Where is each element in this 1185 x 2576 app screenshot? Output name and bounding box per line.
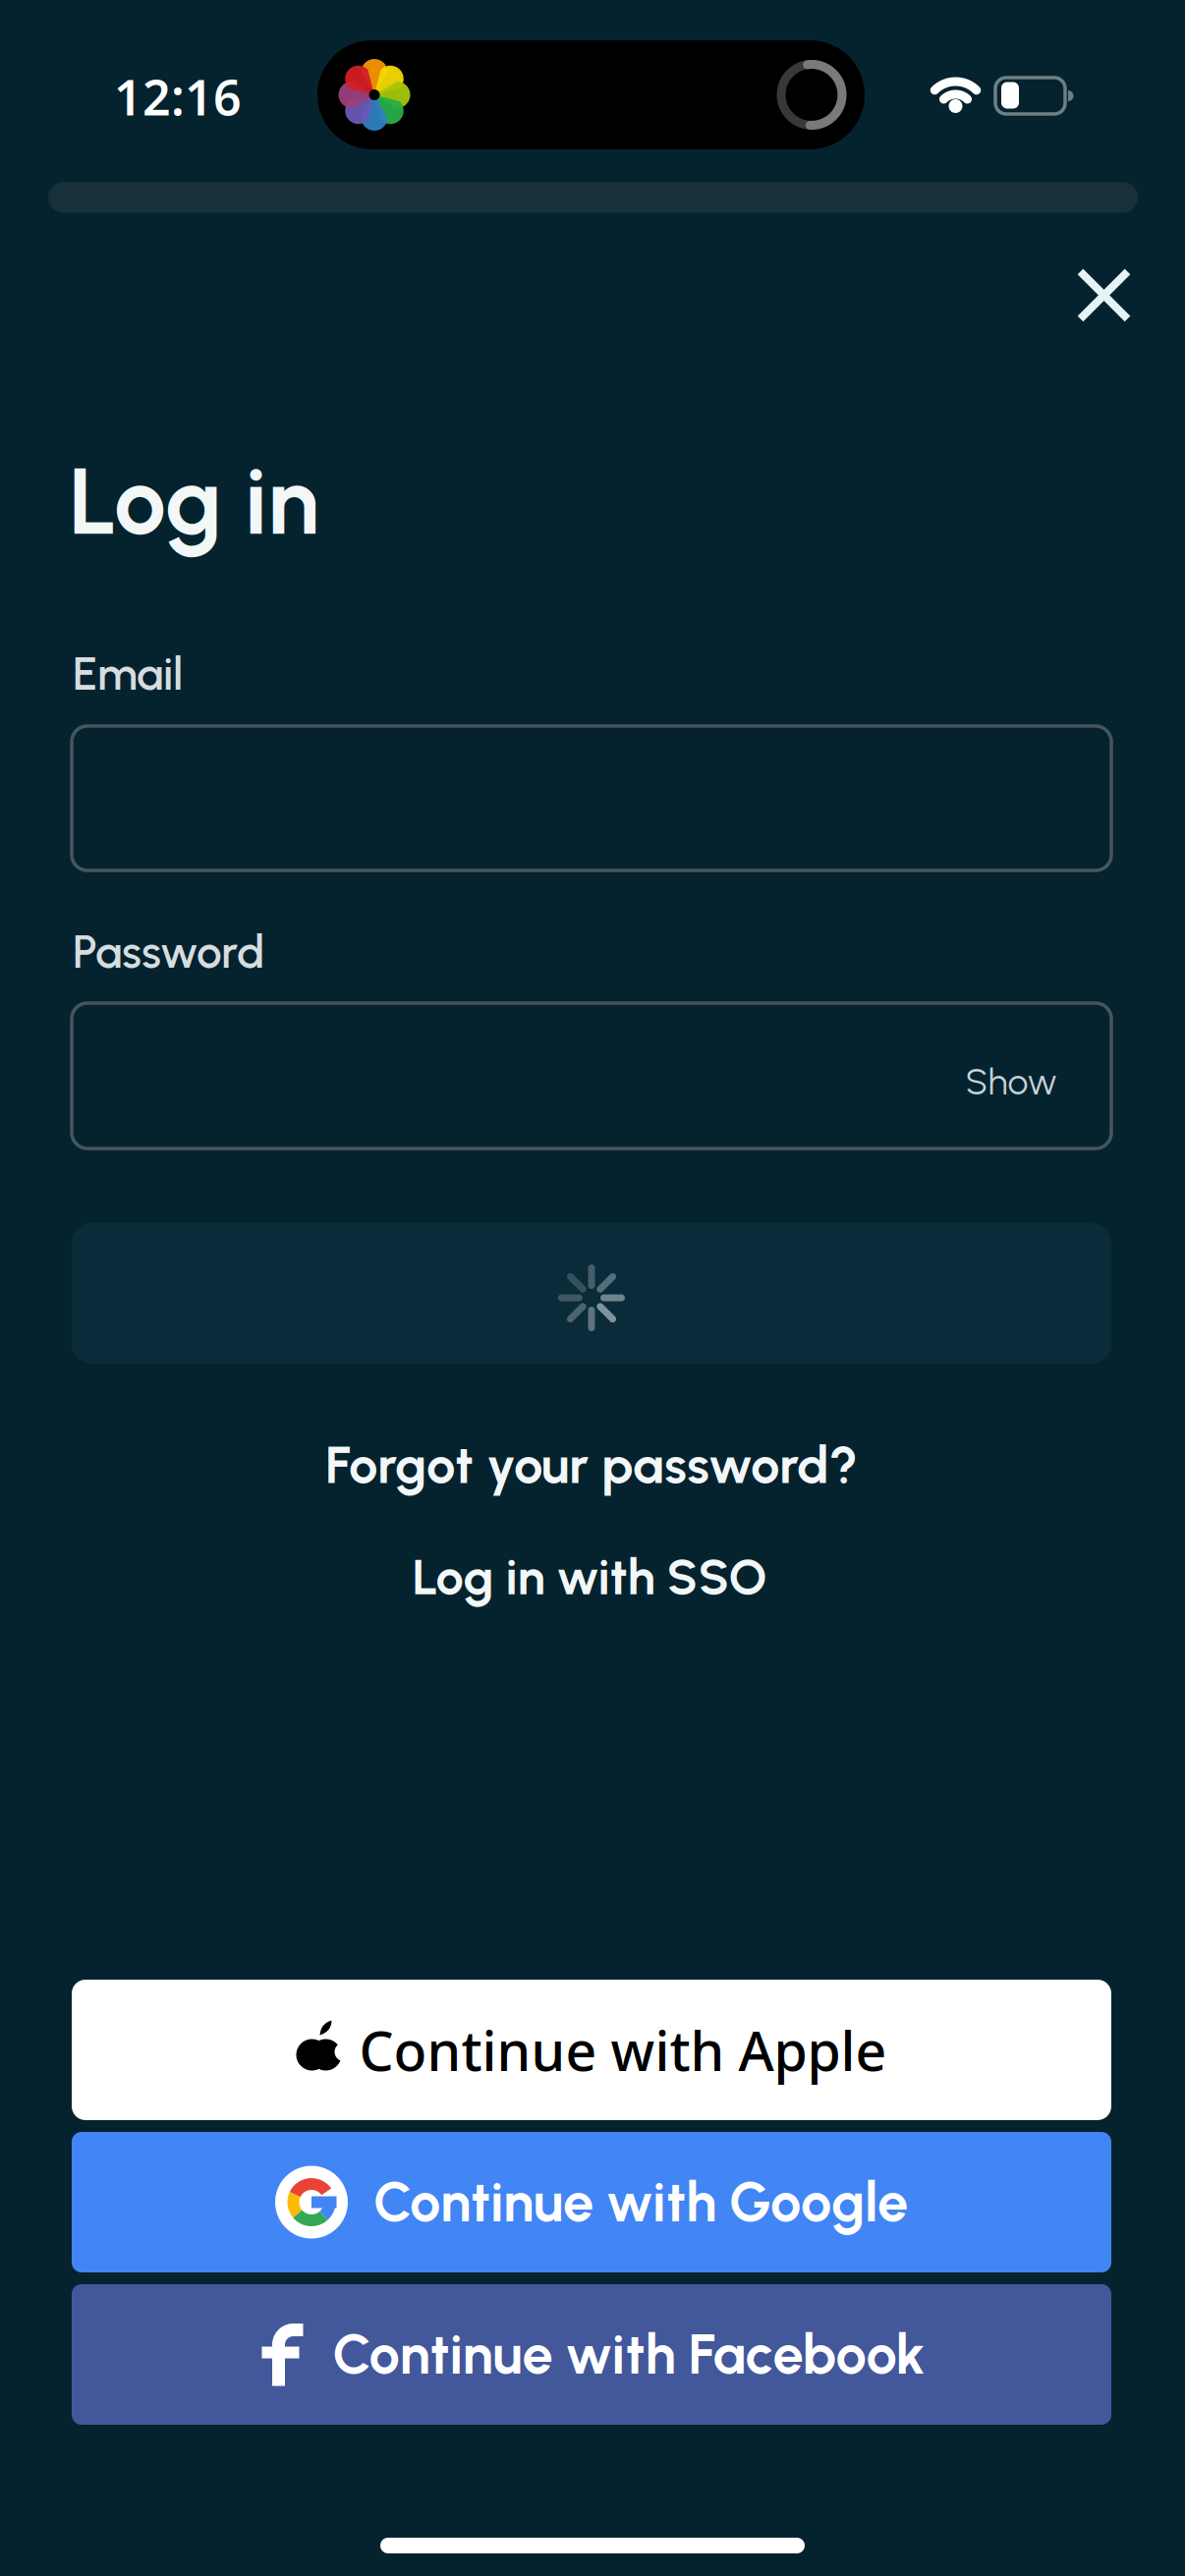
button[interactable]: Logging in: [72, 1223, 1111, 1364]
staticText: Password: [73, 925, 264, 979]
button[interactable]: Continue with Facebook: [72, 2284, 1111, 2425]
button[interactable]: Password: [72, 1003, 1111, 1148]
button[interactable]: Continue with Apple: [72, 1980, 1111, 2120]
staticText: Email: [73, 647, 183, 701]
button[interactable]: Close: [1056, 247, 1151, 342]
staticText: Continue with Google: [373, 2169, 908, 2235]
button[interactable]: Show: [965, 1060, 1057, 1104]
button[interactable]: Forgot your password?: [325, 1434, 858, 1496]
staticText: 12:16: [114, 63, 242, 130]
button[interactable]: Log in with SSO: [412, 1547, 767, 1607]
staticText: Continue with Facebook: [333, 2321, 925, 2387]
button[interactable]: Email: [72, 726, 1111, 870]
staticText: Show: [965, 1060, 1057, 1104]
staticText: Continue with Apple: [359, 2013, 887, 2087]
staticText: Forgot your password?: [325, 1434, 858, 1496]
staticText: Log in with SSO: [412, 1547, 767, 1607]
button[interactable]: Continue with Google: [72, 2132, 1111, 2272]
staticText: Log in: [69, 445, 319, 557]
